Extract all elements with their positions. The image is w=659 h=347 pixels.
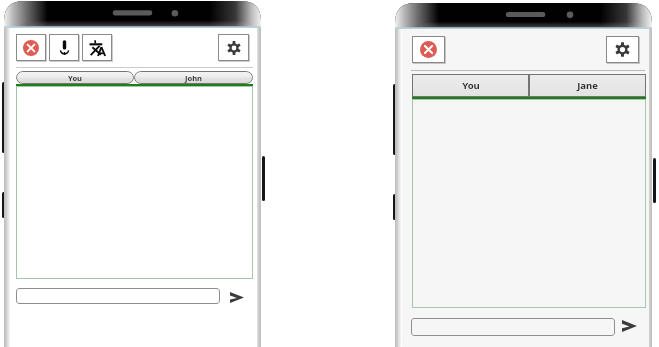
button[interactable]: [16, 288, 220, 304]
button[interactable]: Microphone: [49, 34, 79, 61]
button[interactable]: You: [412, 74, 529, 97]
button[interactable]: Send: [230, 292, 244, 303]
button[interactable]: Close: [16, 34, 46, 61]
button[interactable]: Close: [412, 36, 445, 63]
button[interactable]: [411, 318, 615, 336]
button[interactable]: John: [134, 71, 253, 84]
button[interactable]: Send: [622, 320, 637, 332]
button[interactable]: Jane: [529, 74, 646, 97]
staticText: Jane: [577, 79, 598, 92]
button[interactable]: Settings: [218, 34, 249, 61]
button[interactable]: You: [16, 71, 134, 84]
staticText: John: [185, 73, 202, 83]
button[interactable]: Settings: [606, 36, 639, 63]
staticText: You: [462, 79, 480, 92]
staticText: You: [68, 73, 82, 83]
button[interactable]: Translate: [82, 34, 112, 61]
